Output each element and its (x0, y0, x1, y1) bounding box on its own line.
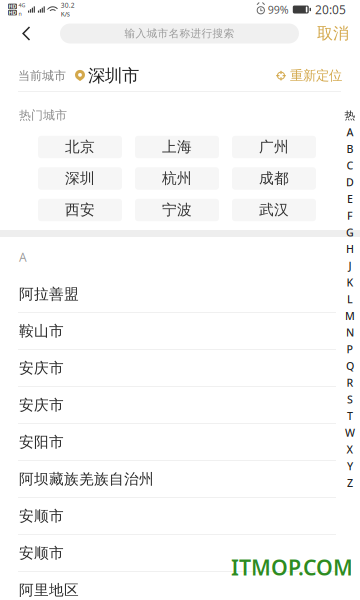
button[interactable]: E (340, 190, 360, 207)
staticText: Y (347, 459, 353, 473)
staticText: 安阳市 (19, 433, 64, 451)
staticText: P (346, 342, 353, 356)
button[interactable]: X (340, 441, 360, 458)
staticText: 安庆市 (19, 396, 64, 414)
staticText: 杭州 (162, 169, 192, 187)
button[interactable]: 深圳 (38, 167, 122, 190)
button[interactable]: 热 (340, 107, 360, 124)
staticText: 30.2 (61, 1, 75, 9)
staticText: ITMOP.COM (231, 553, 353, 581)
staticText: 武汉 (259, 201, 289, 219)
button[interactable]: 返回 (8, 18, 45, 48)
staticText: 4G (18, 2, 25, 9)
staticText: 输入城市名称进行搜索 (124, 27, 234, 40)
staticText: A (346, 125, 353, 139)
staticText: 热门城市 (19, 108, 67, 123)
staticText: A (19, 249, 27, 265)
staticText: Z (347, 476, 353, 490)
button[interactable]: W (340, 424, 360, 441)
staticText: E (347, 192, 353, 206)
button[interactable]: B (340, 140, 360, 157)
button[interactable]: 西安 (38, 199, 122, 221)
button[interactable]: 宁波 (135, 199, 219, 221)
staticText: 广州 (259, 138, 289, 156)
button[interactable]: K (340, 274, 360, 291)
button[interactable]: 输入城市名称进行搜索 (45, 23, 299, 43)
staticText: B (346, 142, 353, 156)
button[interactable]: 安阳市 (0, 424, 360, 461)
staticText: J (348, 259, 351, 273)
staticText: T (347, 409, 353, 423)
staticText: 热 (344, 109, 355, 122)
button[interactable]: 取消 (299, 18, 360, 48)
button[interactable]: S (340, 391, 360, 408)
staticText: C (346, 158, 353, 173)
button[interactable]: 阿拉善盟 (0, 276, 360, 313)
staticText: 取消 (317, 24, 349, 43)
button[interactable]: 安顺市 (0, 535, 360, 572)
staticText: D (346, 175, 354, 189)
button[interactable]: J (340, 257, 360, 274)
button[interactable]: 杭州 (135, 167, 219, 190)
staticText: HD (8, 9, 16, 16)
staticText: L (347, 292, 353, 306)
staticText: 阿拉善盟 (19, 285, 79, 303)
button[interactable]: F (340, 207, 360, 224)
staticText: N (346, 325, 354, 340)
button[interactable]: G (340, 224, 360, 241)
button[interactable]: 阿里地区 (0, 572, 360, 600)
staticText: HD (8, 3, 16, 10)
button[interactable]: R (340, 374, 360, 391)
staticText: 20:05 (315, 1, 346, 17)
staticText: 阿坝藏族羌族自治州 (19, 470, 154, 488)
button[interactable]: 鞍山市 (0, 313, 360, 350)
button[interactable]: P (340, 341, 360, 357)
button[interactable]: A (340, 124, 360, 140)
button[interactable]: 安庆市 (0, 350, 360, 387)
staticText: W (345, 426, 355, 440)
staticText: 北京 (65, 138, 95, 156)
button[interactable]: L (340, 291, 360, 307)
button[interactable]: Y (340, 458, 360, 474)
button[interactable]: C (340, 157, 360, 174)
staticText: F (347, 208, 353, 223)
staticText: 安顺市 (19, 544, 64, 562)
staticText: 宁波 (162, 201, 192, 219)
staticText: 成都 (259, 169, 289, 187)
staticText: 西安 (65, 201, 95, 219)
button[interactable]: 北京 (38, 136, 122, 158)
staticText: M (345, 309, 355, 323)
button[interactable]: T (340, 408, 360, 424)
button[interactable]: 安顺市 (0, 498, 360, 535)
button[interactable]: 阿坝藏族羌族自治州 (0, 461, 360, 498)
staticText: 安顺市 (19, 507, 64, 525)
button[interactable]: D (340, 174, 360, 190)
button[interactable]: M (340, 307, 360, 324)
button[interactable]: 安庆市 (0, 387, 360, 424)
button[interactable]: Q (340, 357, 360, 374)
staticText: 阿里地区 (19, 581, 79, 599)
staticText: 深圳市 (88, 65, 139, 86)
staticText: G (346, 225, 354, 239)
staticText: 上海 (162, 138, 192, 156)
button[interactable]: Z (340, 474, 360, 491)
staticText: R (346, 375, 353, 390)
staticText: 当前城市 (18, 68, 66, 83)
staticText: 重新定位 (290, 67, 342, 84)
button[interactable]: N (340, 324, 360, 341)
button[interactable]: H (340, 241, 360, 257)
button[interactable]: 广州 (232, 136, 316, 158)
staticText: 深圳 (65, 169, 95, 187)
staticText: 安庆市 (19, 359, 64, 377)
staticText: 鞍山市 (19, 322, 64, 340)
staticText: Q (346, 359, 354, 373)
staticText: H (346, 242, 354, 256)
staticText: S (347, 392, 353, 406)
staticText: X (346, 442, 353, 456)
staticText: 99% (268, 2, 289, 17)
button[interactable]: 成都 (232, 167, 316, 190)
button[interactable]: 重新定位 (276, 67, 342, 84)
staticText: K (346, 275, 353, 289)
button[interactable]: 武汉 (232, 199, 316, 221)
button[interactable]: 上海 (135, 136, 219, 158)
